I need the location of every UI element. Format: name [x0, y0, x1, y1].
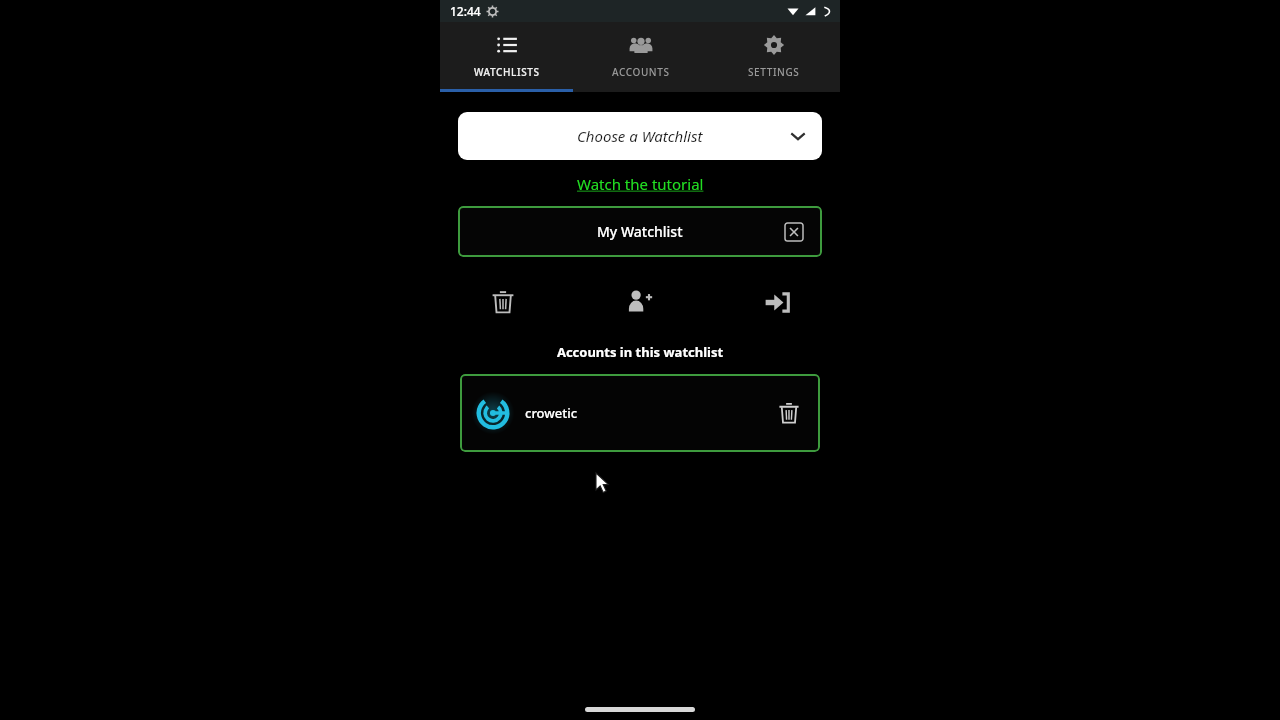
staticText: 12:44 [450, 3, 481, 19]
button[interactable]: Choose a Watchlist [458, 112, 822, 160]
button[interactable]: Remove watchlist [785, 223, 803, 241]
button[interactable]: Watch the tutorial [577, 174, 704, 194]
button[interactable]: Sign in [754, 279, 800, 325]
button[interactable]: Add account [617, 279, 663, 325]
button[interactable]: Delete watchlist [480, 279, 526, 325]
staticText: WATCHLISTS [474, 65, 540, 79]
button[interactable]: My Watchlist [458, 206, 822, 257]
staticText: Accounts in this watchlist [440, 343, 840, 361]
staticText: Choose a Watchlist [577, 126, 703, 146]
button[interactable]: WATCHLISTS [440, 22, 574, 92]
staticText: crowetic [525, 404, 578, 422]
button[interactable]: crowetic [460, 374, 820, 452]
staticText: My Watchlist [597, 222, 683, 241]
button[interactable]: Remove account [774, 398, 804, 428]
staticText: ACCOUNTS [612, 65, 670, 79]
button[interactable]: ACCOUNTS [574, 22, 707, 92]
staticText: SETTINGS [748, 65, 800, 79]
button[interactable]: SETTINGS [707, 22, 840, 92]
